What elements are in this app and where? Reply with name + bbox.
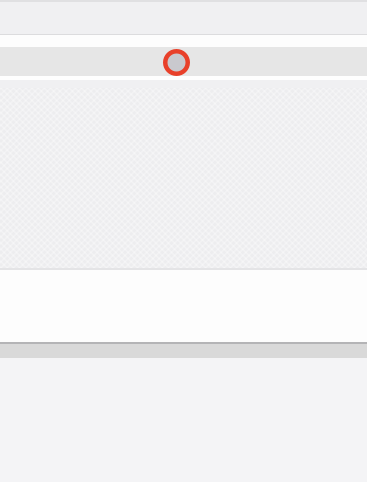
button[interactable]: Record [161, 47, 191, 77]
